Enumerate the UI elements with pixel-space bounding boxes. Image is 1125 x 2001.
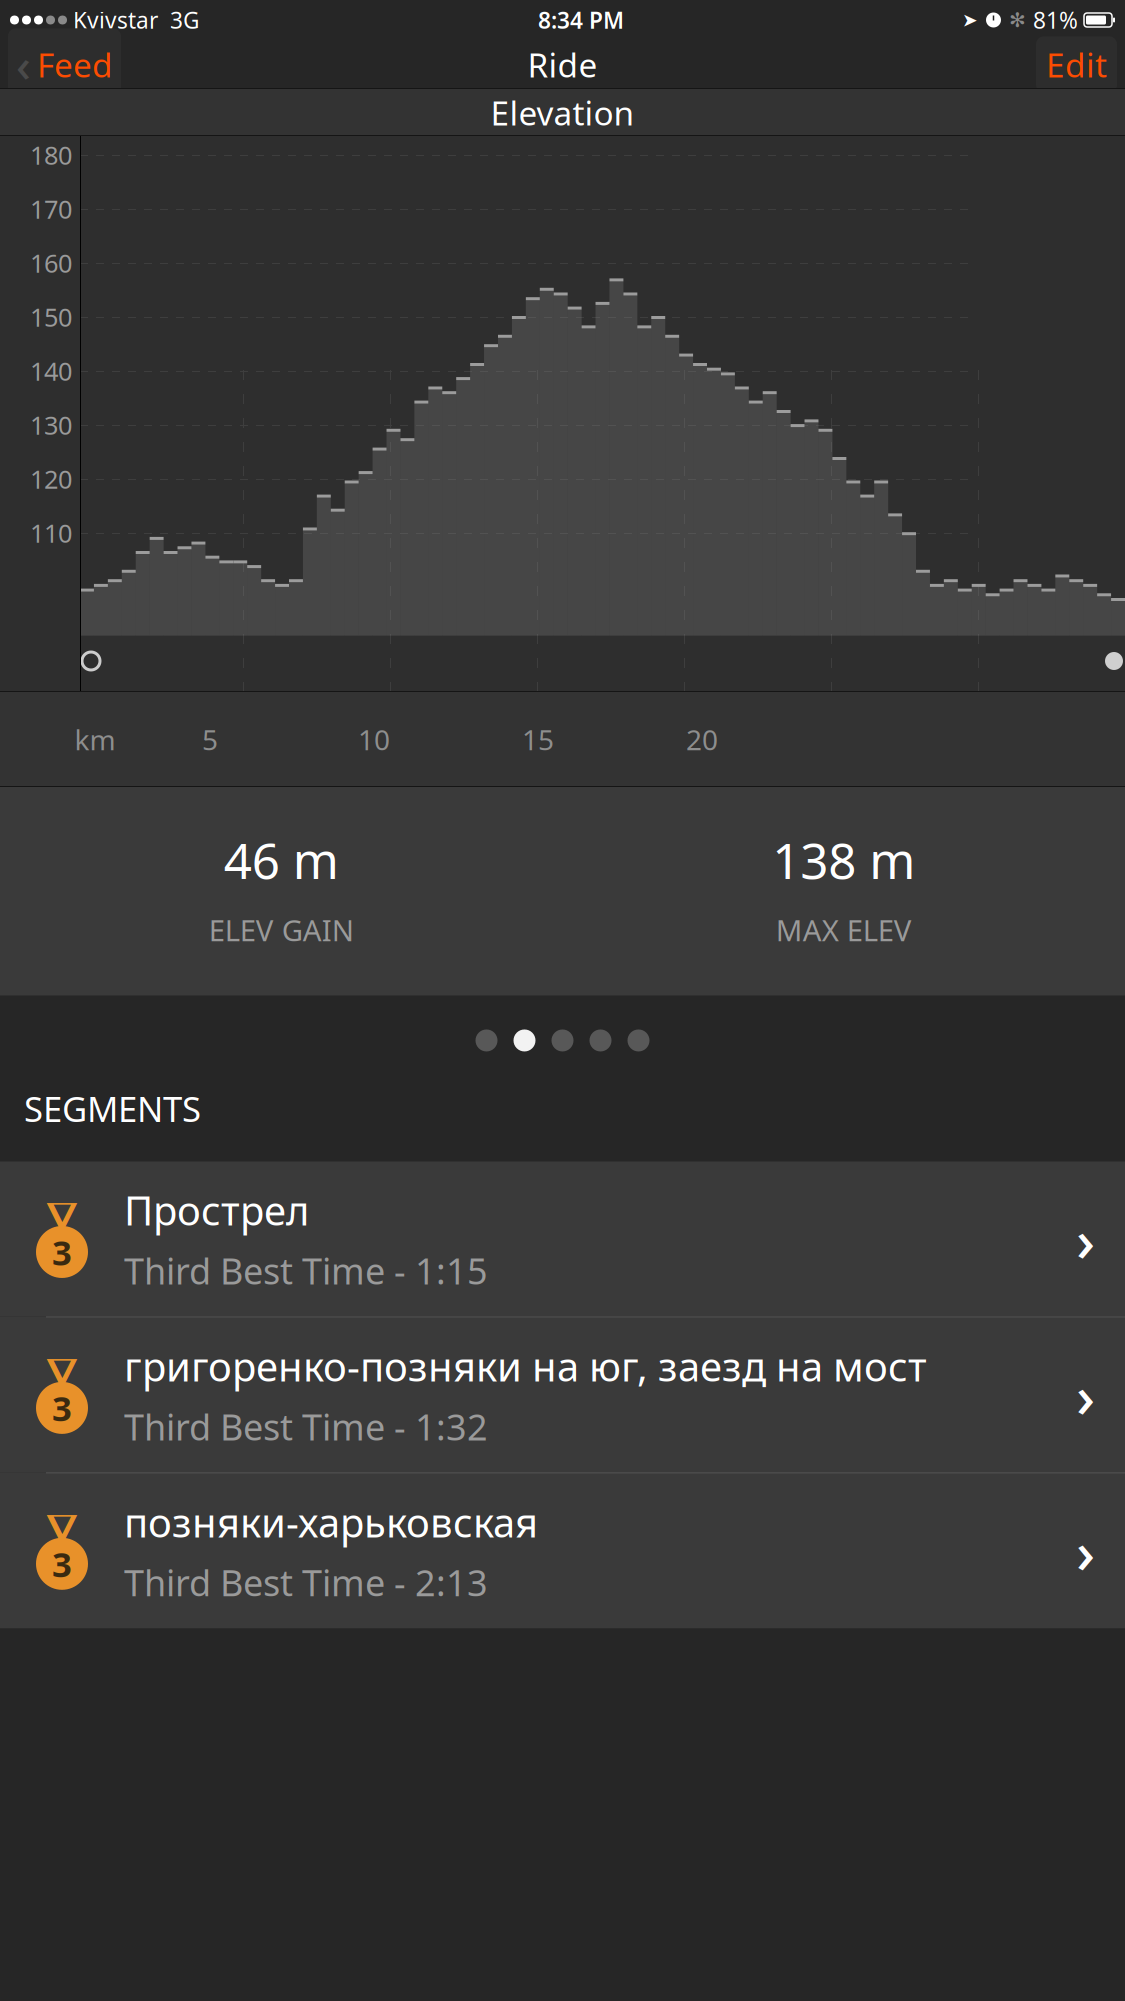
staticText: Elevation [490,90,634,135]
staticText: Edit [1046,42,1107,87]
staticText: 3 [52,1385,72,1431]
staticText: ➤ [962,9,978,31]
staticText: ▼ [46,1504,77,1549]
staticText: 3 [52,1541,72,1587]
staticText: 150 [30,300,72,334]
staticText: 46 m [224,827,339,892]
staticText: ▼ [53,1199,70,1224]
staticText: 8:34 PM [538,5,624,35]
staticText: › [1076,1200,1095,1278]
staticText: km [74,721,115,758]
button[interactable]: ▼ [0,1316,1125,1472]
staticText: 138 m [772,827,915,892]
staticText: ‹ [16,34,31,95]
staticText: позняки-харьковская [124,1495,538,1548]
staticText: 81% [1033,5,1078,35]
staticText: 130 [30,408,72,442]
button[interactable]: ▼ [0,1161,1125,1316]
staticText: 3 [52,1229,72,1275]
staticText: ▼ [46,1192,77,1238]
staticText: 140 [30,354,72,388]
staticText: › [1076,1356,1095,1434]
staticText: SEGMENTS [24,1085,201,1131]
staticText: Прострел [124,1183,309,1237]
staticText: Ride [527,42,597,87]
staticText: › [1076,1512,1095,1590]
staticText: ELEV GAIN [209,910,354,949]
button[interactable]: ‹ [8,28,121,101]
staticText: 20 [686,721,718,758]
button[interactable]: ▼ [0,1472,1125,1628]
staticText: 160 [30,246,72,280]
staticText: Feed [37,42,113,87]
staticText: григоренко-позняки на юг, заезд на мост [124,1339,927,1392]
staticText: 110 [30,516,72,550]
staticText: MAX ELEV [776,910,912,949]
staticText: Third Best Time - 1:15 [124,1247,488,1294]
staticText: Kyivstar [73,5,158,35]
staticText: 120 [30,462,72,496]
staticText: 170 [30,192,72,226]
staticText: 10 [358,721,390,758]
button[interactable]: Edit [1036,36,1117,93]
staticText: Third Best Time - 2:13 [124,1558,488,1606]
staticText: 15 [522,721,554,758]
staticText: 5 [202,721,218,758]
staticText: Third Best Time - 1:32 [124,1402,488,1450]
staticText: ▼ [53,1354,70,1380]
staticText: ✻ [1009,9,1026,31]
staticText: ▼ [53,1510,70,1536]
staticText: ▼ [46,1348,77,1394]
staticText: 180 [30,138,72,172]
staticText: 3G [170,5,200,35]
